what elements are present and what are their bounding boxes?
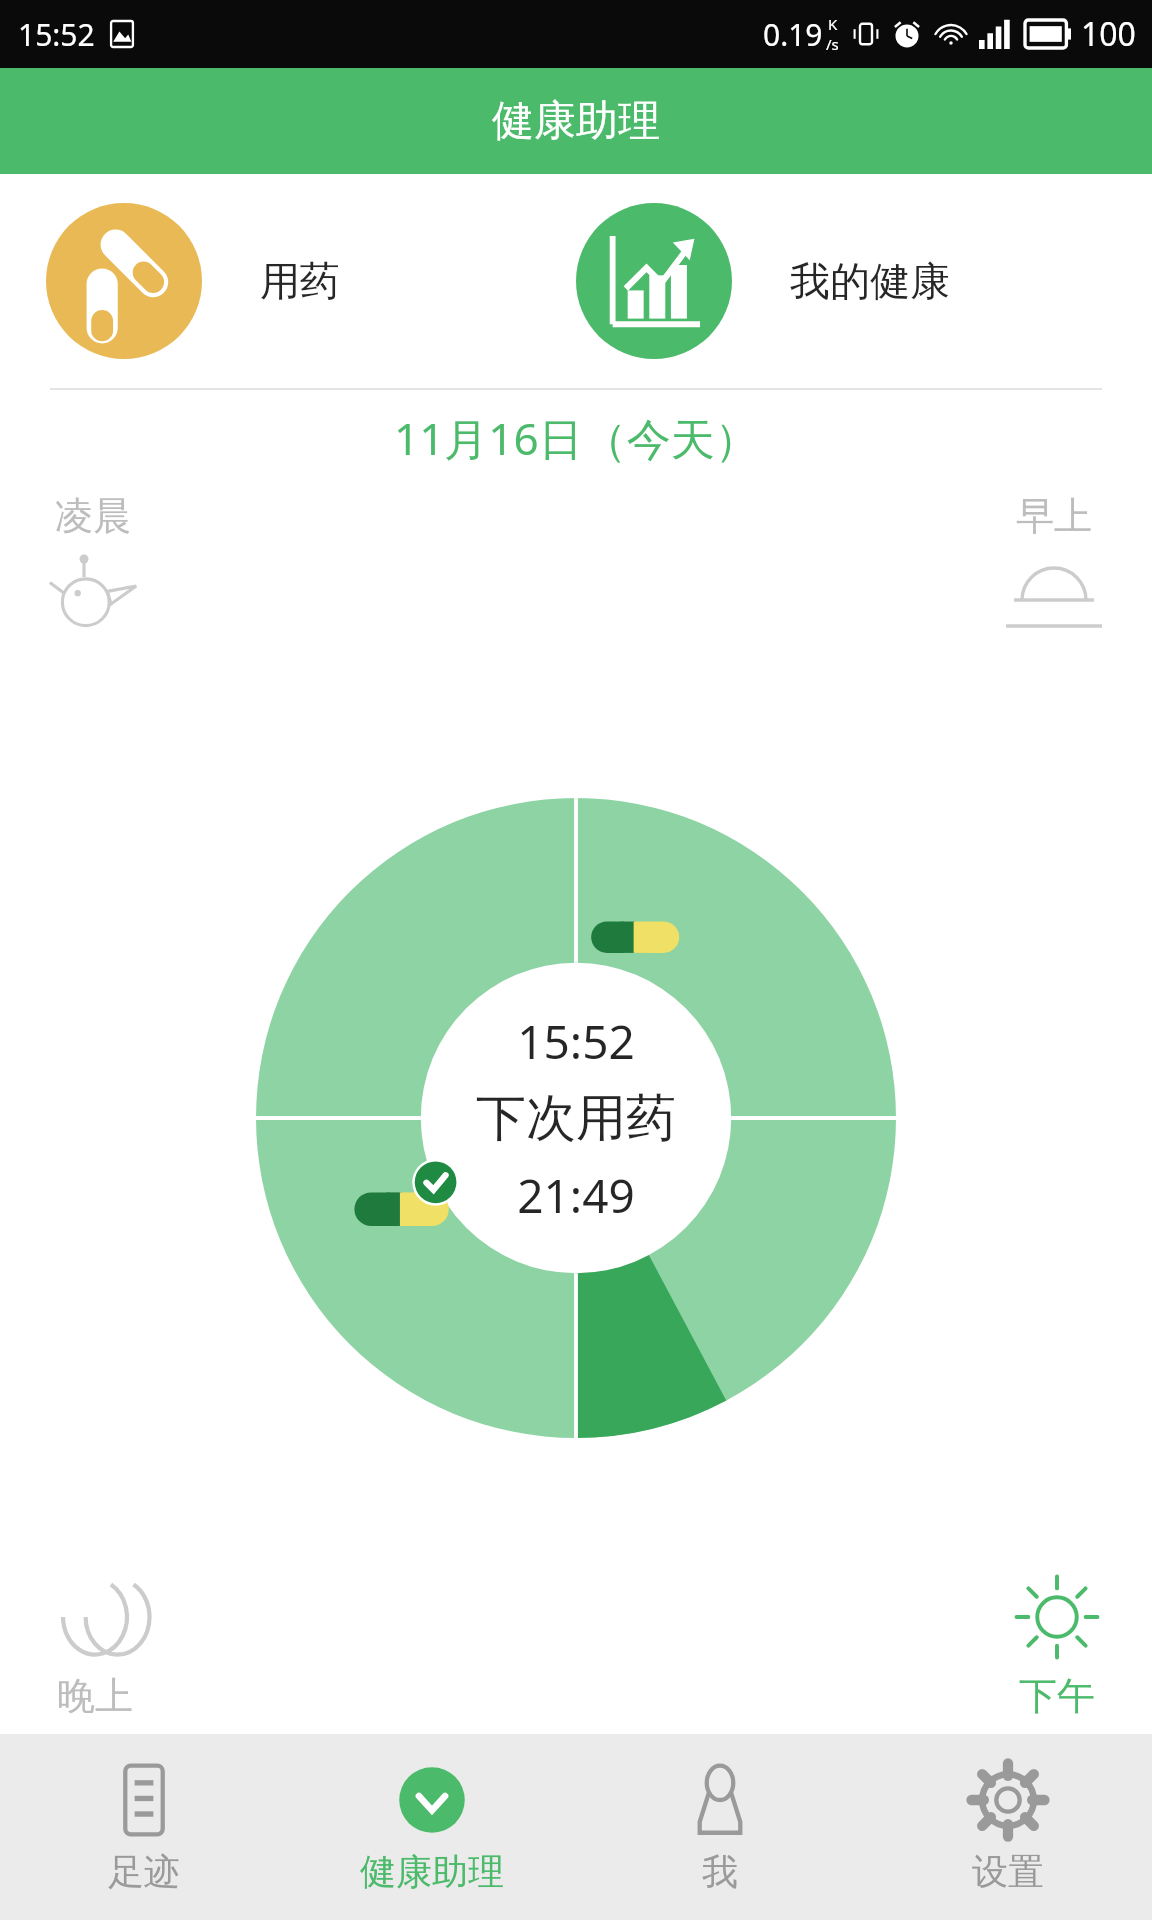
button[interactable]: 我 (576, 1734, 864, 1920)
staticText: 下午 (1019, 1672, 1095, 1720)
staticText: 15:52 (517, 1010, 635, 1073)
staticText: 15:52 (18, 14, 95, 55)
staticText: 0.19 (763, 14, 823, 55)
staticText: K (828, 14, 838, 34)
other: 设置 (969, 1761, 1047, 1839)
other: 足迹 (105, 1761, 183, 1839)
staticText: 健康助理 (492, 95, 660, 148)
other: 健康助理 (393, 1761, 471, 1839)
staticText: 凌晨 (55, 492, 131, 540)
staticText: 足迹 (108, 1849, 180, 1894)
button[interactable]: 15:52 (256, 798, 896, 1438)
staticText: 11月16日（今天） (394, 408, 759, 468)
staticText: 我的健康 (790, 256, 950, 306)
button[interactable]: 用药 (0, 174, 576, 388)
staticText: 晚上 (57, 1672, 133, 1720)
button[interactable]: 我的健康 (576, 174, 1152, 388)
staticText: 健康助理 (360, 1849, 504, 1894)
staticText: 我 (702, 1849, 738, 1894)
staticText: 早上 (1016, 492, 1092, 540)
staticText: 21:49 (517, 1164, 635, 1227)
staticText: 下次用药 (476, 1087, 676, 1150)
staticText: 设置 (972, 1849, 1044, 1894)
button[interactable]: 足迹 (0, 1734, 288, 1920)
staticText: 用药 (260, 256, 340, 306)
button[interactable]: 设置 (864, 1734, 1152, 1920)
staticText: /s (826, 34, 839, 54)
button[interactable]: 11月16日（今天） (0, 390, 1152, 486)
button[interactable]: 健康助理 (288, 1734, 576, 1920)
staticText: 100 (1081, 12, 1136, 56)
other: 我 (681, 1761, 759, 1839)
